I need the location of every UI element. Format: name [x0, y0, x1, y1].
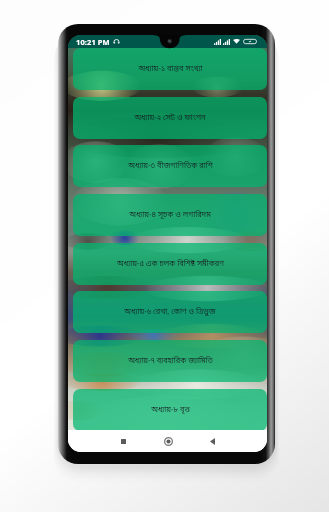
button[interactable]: অধ্যায়-৩ বীজগাণিতিক রাশি: [73, 145, 267, 187]
button[interactable]: Back: [203, 432, 221, 450]
button[interactable]: অধ্যায়-৬ রেখা, কোণ ও ত্রিভুজ: [73, 291, 267, 333]
button[interactable]: অধ্যায়-৮ বৃত্ত: [73, 389, 267, 431]
button[interactable]: অধ্যায়-৭ ব্যবহারিক জ্যামিতি: [73, 340, 267, 382]
button[interactable]: অধ্যায়-৪ সূচক ও লগারিদম: [73, 194, 267, 236]
staticText: অধ্যায়-৭ ব্যবহারিক জ্যামিতি: [128, 356, 213, 366]
button[interactable]: Recent apps: [114, 432, 132, 450]
staticText: অধ্যায়-৮ বৃত্ত: [151, 405, 190, 415]
staticText: অধ্যায়-৩ বীজগাণিতিক রাশি: [128, 161, 213, 171]
staticText: অধ্যায়-২ সেট ও ফাংশন: [134, 113, 206, 123]
button[interactable]: Home: [159, 432, 177, 450]
button[interactable]: অধ্যায়-৫ এক চলক বিশিষ্ট সমীকরণ: [73, 243, 267, 285]
staticText: 10:21 PM: [76, 37, 110, 47]
button[interactable]: অধ্যায়-১ বাস্তব সংখ্যা: [73, 48, 267, 90]
staticText: অধ্যায়-৫ এক চলক বিশিষ্ট সমীকরণ: [117, 259, 224, 269]
staticText: অধ্যায়-১ বাস্তব সংখ্যা: [138, 64, 203, 74]
staticText: অধ্যায়-৪ সূচক ও লগারিদম: [129, 210, 211, 220]
button[interactable]: অধ্যায়-২ সেট ও ফাংশন: [73, 97, 267, 139]
staticText: অধ্যায়-৬ রেখা, কোণ ও ত্রিভুজ: [124, 307, 216, 317]
